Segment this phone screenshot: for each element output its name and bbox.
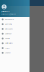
staticText: Jamie Rivera (2, 11, 10, 12)
staticText: Settings (5, 47, 10, 49)
button[interactable]: Notifications (0, 41, 29, 46)
button[interactable]: Log out (0, 50, 29, 55)
staticText: jamie.rivera@mail.com (2, 13, 16, 15)
button[interactable]: My Profile (0, 22, 29, 27)
button[interactable]: Settings (0, 46, 29, 50)
staticText: Log out (5, 52, 10, 54)
button[interactable]: Teams (0, 36, 29, 41)
staticText: Teams (5, 38, 10, 39)
button[interactable]: Dashboard (0, 17, 29, 22)
staticText: Notifications (5, 42, 13, 44)
staticText: Messages (5, 28, 13, 30)
button[interactable]: Calendar (0, 31, 29, 36)
button[interactable]: Messages (0, 27, 29, 31)
staticText: My Profile (5, 23, 12, 25)
staticText: Dashboard (5, 18, 14, 20)
staticText: Calendar (5, 33, 12, 35)
